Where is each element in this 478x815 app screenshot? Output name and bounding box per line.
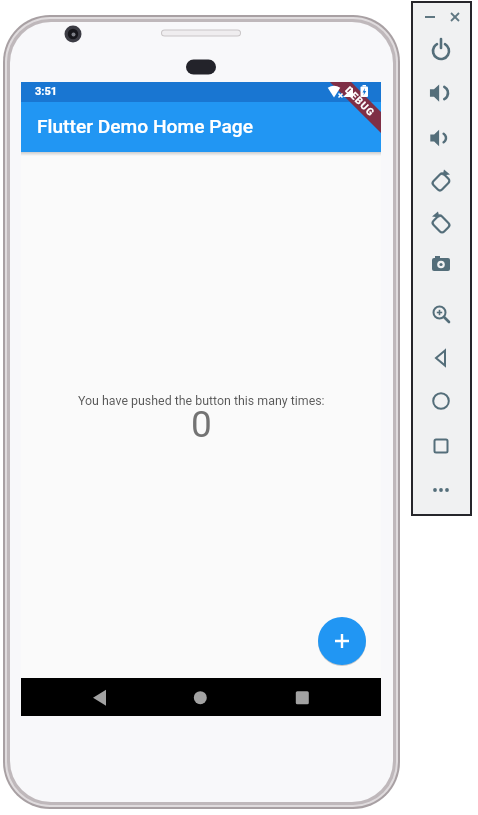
button[interactable] [426,249,456,279]
button[interactable] [426,343,456,373]
staticText: DEBUG [342,84,377,119]
button[interactable] [422,9,438,25]
button[interactable] [447,9,463,25]
staticText: You have pushed the button this many tim… [78,393,325,408]
button[interactable] [426,78,456,108]
button[interactable] [426,386,456,416]
button[interactable] [426,431,456,461]
button[interactable] [426,475,456,505]
button[interactable] [426,166,456,196]
button[interactable] [318,617,366,665]
button[interactable] [426,208,456,238]
button[interactable] [426,35,456,65]
staticText: 3:51 [35,85,58,98]
staticText: Flutter Demo Home Page [37,115,254,138]
button[interactable] [426,299,456,329]
staticText: 0 [191,403,212,446]
button[interactable] [426,123,456,153]
